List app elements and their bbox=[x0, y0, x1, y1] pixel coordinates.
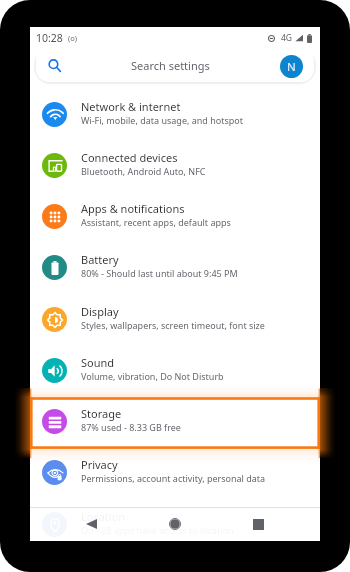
staticText: Volume, vibration, Do Not Disturb bbox=[81, 370, 224, 382]
button[interactable]: Recent apps bbox=[245, 511, 271, 537]
button[interactable]: Account bbox=[280, 55, 303, 78]
button[interactable]: Display bbox=[30, 294, 320, 345]
button[interactable]: Apps & notifications bbox=[30, 191, 320, 242]
button[interactable]: Storage bbox=[30, 396, 320, 447]
button[interactable]: Battery bbox=[30, 242, 320, 293]
staticText: Network & internet bbox=[81, 99, 181, 114]
staticText: Bluetooth, Android Auto, NFC bbox=[81, 165, 206, 177]
staticText: On - 28 apps have access to location bbox=[81, 524, 234, 536]
staticText: (o) bbox=[68, 33, 78, 43]
staticText: Location bbox=[81, 509, 126, 524]
staticText: Styles, wallpapers, screen timeout, font… bbox=[81, 319, 265, 331]
staticText: Wi-Fi, mobile, data usage, and hotspot bbox=[81, 114, 243, 126]
button[interactable]: Search settings bbox=[36, 48, 314, 82]
staticText: Search settings bbox=[131, 58, 210, 73]
staticText: Battery bbox=[81, 252, 119, 267]
staticText: Display bbox=[81, 304, 119, 319]
button[interactable]: Home bbox=[162, 511, 188, 537]
button[interactable]: Network & internet bbox=[30, 89, 320, 140]
staticText: 80% - Should last until about 9:45 PM bbox=[81, 267, 238, 279]
staticText: Apps & notifications bbox=[81, 201, 185, 216]
staticText: Privacy bbox=[81, 457, 118, 472]
staticText: Connected devices bbox=[81, 150, 178, 165]
button[interactable]: Back bbox=[78, 511, 104, 537]
staticText: 10:28 bbox=[36, 31, 63, 45]
staticText: Assistant, recent apps, default apps bbox=[81, 216, 231, 228]
button[interactable]: Location bbox=[30, 499, 320, 550]
staticText: 4G bbox=[281, 32, 293, 44]
staticText: Sound bbox=[81, 355, 115, 370]
button[interactable]: Privacy bbox=[30, 447, 320, 498]
button[interactable]: Connected devices bbox=[30, 140, 320, 191]
staticText: Storage bbox=[81, 406, 122, 421]
button[interactable]: Sound bbox=[30, 345, 320, 396]
staticText: N bbox=[287, 59, 296, 75]
staticText: 87% used - 8.33 GB free bbox=[81, 421, 181, 433]
staticText: Permissions, account activity, personal … bbox=[81, 472, 266, 484]
